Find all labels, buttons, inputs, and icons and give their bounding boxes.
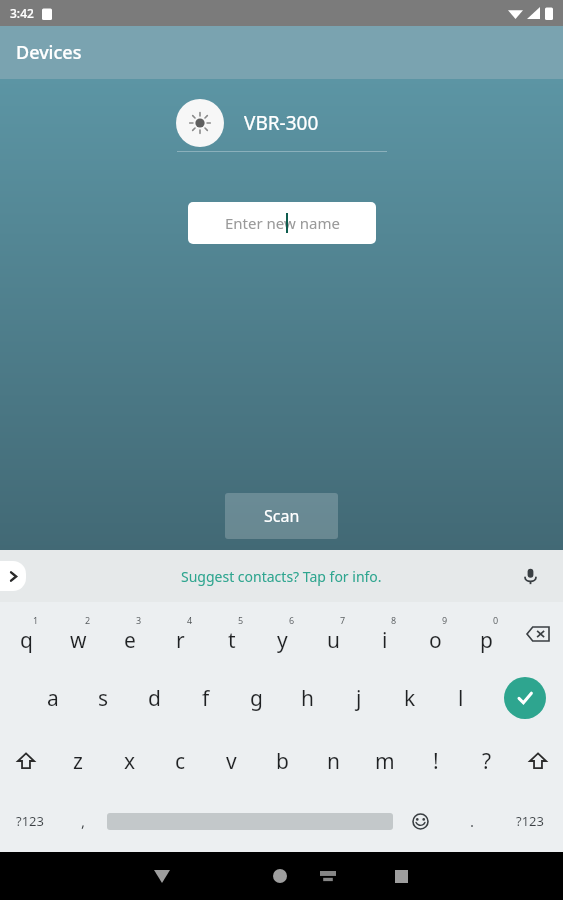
staticText: v	[226, 747, 237, 776]
staticText: m	[375, 747, 395, 776]
staticText: l	[458, 684, 464, 713]
button[interactable]: Enter new name	[188, 202, 376, 244]
staticText: Scan	[264, 505, 300, 527]
button[interactable]: Recent apps	[377, 852, 425, 900]
staticText: 4	[187, 614, 193, 626]
button[interactable]: v	[206, 730, 257, 792]
button[interactable]: Hide keyboard	[138, 852, 186, 900]
staticText: a	[47, 684, 59, 713]
button[interactable]: h	[282, 666, 333, 730]
staticText: ?123	[516, 812, 544, 830]
button[interactable]: 9	[410, 602, 461, 666]
button[interactable]: 4	[155, 602, 206, 666]
button[interactable]: 2	[52, 602, 104, 666]
button[interactable]: d	[129, 666, 180, 730]
button[interactable]: Backspace	[512, 602, 563, 666]
button[interactable]: 1	[0, 602, 52, 666]
button[interactable]: 7	[308, 602, 359, 666]
button[interactable]: .	[448, 792, 497, 850]
button[interactable]: Voice input	[515, 561, 545, 591]
staticText: 3:42	[10, 5, 34, 21]
button[interactable]: 3	[104, 602, 155, 666]
staticText: ?	[482, 747, 492, 776]
button[interactable]: x	[104, 730, 155, 792]
staticText: b	[276, 747, 289, 776]
staticText: z	[73, 747, 83, 776]
staticText: u	[327, 626, 340, 655]
staticText: .	[470, 811, 475, 831]
button[interactable]: Switch keyboard	[310, 858, 346, 894]
button[interactable]: l	[435, 666, 486, 730]
staticText: x	[124, 747, 136, 776]
button[interactable]: j	[333, 666, 384, 730]
button[interactable]: Shift	[0, 730, 52, 792]
staticText: y	[277, 626, 288, 655]
staticText: 6	[289, 614, 295, 626]
button[interactable]: ,	[60, 792, 107, 850]
button[interactable]: f	[180, 666, 231, 730]
staticText: r	[176, 626, 185, 655]
button[interactable]: s	[78, 666, 129, 730]
staticText: Devices	[16, 40, 82, 65]
staticText: VBR-300	[244, 110, 319, 136]
staticText: f	[202, 684, 210, 713]
staticText: 5	[238, 614, 244, 626]
staticText: s	[98, 684, 109, 713]
staticText: 1	[33, 614, 39, 626]
button[interactable]: Space	[107, 792, 393, 850]
staticText: ?123	[16, 812, 44, 830]
staticText: c	[175, 747, 186, 776]
staticText: g	[250, 684, 263, 713]
button[interactable]: c	[155, 730, 206, 792]
button[interactable]: Home	[256, 852, 304, 900]
staticText: e	[124, 626, 136, 655]
button[interactable]: 5	[206, 602, 257, 666]
button[interactable]: Scan	[225, 493, 338, 539]
staticText: w	[70, 626, 87, 655]
staticText: n	[327, 747, 340, 776]
button[interactable]: 6	[257, 602, 308, 666]
button[interactable]: z	[52, 730, 104, 792]
staticText: o	[429, 626, 442, 655]
staticText: 8	[391, 614, 397, 626]
button[interactable]: k	[384, 666, 435, 730]
staticText: p	[480, 626, 493, 655]
staticText: j	[356, 684, 362, 713]
button[interactable]: Shift	[512, 730, 563, 792]
staticText: h	[301, 684, 314, 713]
button[interactable]: 8	[359, 602, 410, 666]
staticText: t	[228, 626, 236, 655]
button[interactable]: 0	[461, 602, 512, 666]
button[interactable]: VBR-300	[176, 95, 388, 151]
staticText: 3	[136, 614, 142, 626]
button[interactable]: n	[308, 730, 359, 792]
button[interactable]: Emoji	[393, 792, 448, 850]
staticText: 0	[493, 614, 499, 626]
button[interactable]: b	[257, 730, 308, 792]
staticText: i	[382, 626, 388, 655]
staticText: !	[433, 747, 439, 776]
staticText: 2	[85, 614, 91, 626]
staticText: 9	[442, 614, 448, 626]
staticText: d	[148, 684, 161, 713]
button[interactable]: ?123	[0, 792, 60, 850]
button[interactable]: ?	[461, 730, 512, 792]
staticText: Enter new name	[225, 213, 340, 233]
staticText: 7	[340, 614, 346, 626]
button[interactable]: a	[27, 666, 78, 730]
button[interactable]: !	[410, 730, 461, 792]
button[interactable]: Done	[486, 666, 563, 730]
button[interactable]: Suggest contacts? Tap for info.	[181, 567, 382, 586]
button[interactable]: ?123	[497, 792, 563, 850]
staticText: ,	[81, 811, 86, 831]
button[interactable]: Expand suggestions	[0, 561, 26, 591]
staticText: k	[404, 684, 416, 713]
staticText: q	[20, 626, 33, 655]
button[interactable]: g	[231, 666, 282, 730]
button[interactable]: m	[359, 730, 410, 792]
